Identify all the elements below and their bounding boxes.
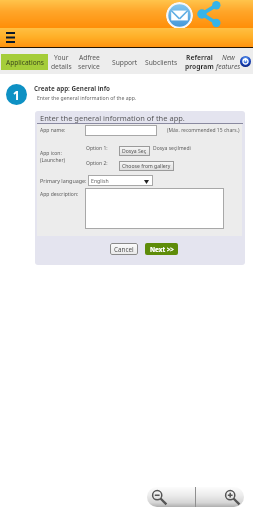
staticText: Cancel (114, 245, 134, 254)
staticText: Create app: General info (34, 84, 111, 93)
staticText: Subclients (145, 58, 178, 67)
button[interactable]: Subclients (145, 58, 178, 67)
button[interactable]: Referral (185, 53, 214, 71)
button[interactable]: Next >> (145, 243, 178, 255)
button[interactable]: English (88, 175, 153, 186)
staticText: Adfree (79, 53, 100, 62)
staticText: Next >> (150, 245, 174, 254)
staticText: Option 1: (86, 145, 108, 152)
button[interactable]: Applications (1, 54, 48, 70)
button[interactable]: Menu (3, 30, 17, 44)
staticText: New (222, 53, 235, 62)
button[interactable]: Zoom in (196, 487, 244, 507)
button[interactable]: Cancel (110, 243, 138, 255)
button[interactable]: Share (197, 1, 221, 27)
staticText: App name: (40, 127, 66, 134)
staticText: Primary language: (40, 177, 87, 184)
staticText: Enter the general information of the app… (40, 113, 185, 123)
staticText: English (91, 177, 109, 184)
button[interactable]: New (216, 53, 241, 71)
staticText: Support (112, 58, 138, 67)
staticText: Choose from gallery (122, 163, 171, 170)
button[interactable]: Power (240, 56, 251, 67)
staticText: Enter the general information of the app… (37, 94, 137, 101)
staticText: service (78, 62, 100, 71)
button[interactable]: Your (51, 53, 72, 71)
button[interactable]: Adfree (78, 53, 100, 71)
staticText: Dosya seçilmedi (153, 145, 191, 152)
button[interactable]: Zoom out (147, 487, 195, 507)
staticText: (Launcher) (40, 157, 65, 164)
staticText: features (216, 62, 241, 71)
staticText: Option 2: (86, 160, 108, 167)
staticText: details (51, 62, 72, 71)
staticText: Dosya Seç (122, 148, 147, 155)
button[interactable]: Support (112, 58, 138, 67)
button[interactable]: Choose from gallery (119, 161, 174, 171)
staticText: Your (54, 53, 69, 62)
button[interactable]: Mail (166, 2, 193, 29)
staticText: (Máx. recommended 15 chars.) (167, 127, 240, 134)
staticText: App icon: (40, 150, 62, 157)
staticText: Applications (6, 58, 44, 67)
staticText: 1 (13, 87, 20, 103)
staticText: App description: (40, 191, 79, 198)
button[interactable]: Dosya Seç (119, 146, 150, 156)
staticText: program (185, 62, 214, 71)
staticText: Referral (186, 53, 213, 62)
